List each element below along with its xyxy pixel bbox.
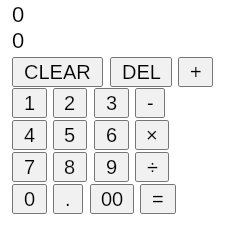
staticText: . bbox=[65, 188, 71, 210]
staticText: ÷ bbox=[147, 156, 158, 178]
button[interactable]: One bbox=[12, 88, 47, 118]
staticText: CLEAR bbox=[24, 61, 91, 83]
staticText: 8 bbox=[64, 156, 76, 178]
button[interactable]: Five bbox=[53, 120, 87, 150]
button[interactable]: Divide bbox=[135, 152, 169, 182]
button[interactable]: Four bbox=[12, 120, 47, 150]
button[interactable]: Six bbox=[94, 120, 129, 150]
staticText: = bbox=[152, 188, 164, 210]
button[interactable]: Seven bbox=[12, 152, 47, 182]
staticText: 7 bbox=[24, 156, 36, 178]
button[interactable]: Decimal point bbox=[53, 184, 83, 214]
staticText: 0 bbox=[12, 2, 25, 27]
staticText: - bbox=[147, 92, 154, 114]
button[interactable]: Three bbox=[94, 88, 129, 118]
button[interactable]: Double zero bbox=[90, 184, 134, 214]
staticText: 2 bbox=[64, 92, 76, 114]
staticText: 0 bbox=[24, 188, 36, 210]
staticText: 3 bbox=[106, 92, 118, 114]
button[interactable]: Eight bbox=[53, 152, 87, 182]
staticText: 9 bbox=[106, 156, 118, 178]
button[interactable]: Equals bbox=[140, 184, 176, 214]
staticText: 4 bbox=[24, 124, 36, 146]
staticText: × bbox=[146, 124, 158, 146]
button[interactable]: Multiply bbox=[135, 120, 169, 150]
staticText: 5 bbox=[64, 124, 76, 146]
staticText: 00 bbox=[101, 188, 124, 210]
button[interactable]: Minus bbox=[135, 88, 165, 118]
staticText: 6 bbox=[106, 124, 118, 146]
button[interactable]: Nine bbox=[94, 152, 129, 182]
staticText: DEL bbox=[122, 61, 161, 83]
staticText: 1 bbox=[24, 92, 36, 114]
button[interactable]: Clear bbox=[12, 57, 103, 87]
button[interactable]: Delete last character bbox=[110, 57, 172, 87]
staticText: + bbox=[190, 61, 202, 83]
button[interactable]: Zero bbox=[12, 184, 47, 214]
button[interactable]: Plus bbox=[178, 57, 213, 87]
staticText: 0 bbox=[12, 28, 25, 53]
button[interactable]: Two bbox=[53, 88, 87, 118]
